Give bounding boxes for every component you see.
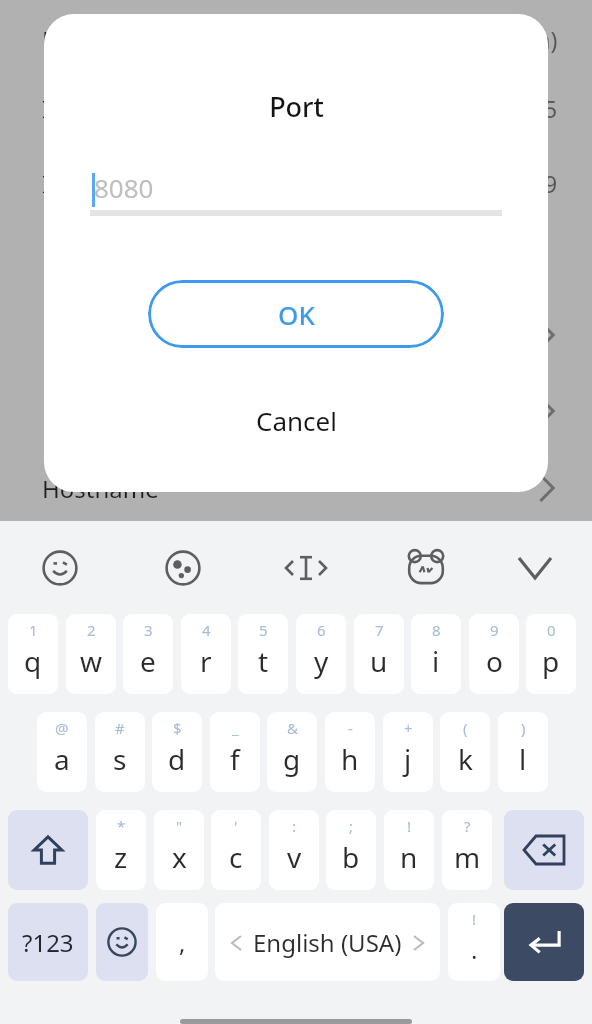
staticText: 6 <box>317 620 326 640</box>
staticText: # <box>115 718 125 738</box>
button[interactable]: # <box>95 712 145 792</box>
button[interactable]: @ <box>37 712 87 792</box>
button[interactable]: & <box>267 712 317 792</box>
staticText: y <box>314 642 329 680</box>
button[interactable]: Proxy <box>0 378 592 444</box>
staticText: & <box>287 718 298 738</box>
staticText: Port <box>42 319 90 352</box>
button[interactable]: English (USA) <box>215 903 440 981</box>
staticText: 8080 <box>94 170 154 205</box>
button[interactable]: Emoji <box>30 538 90 598</box>
staticText: 9 <box>544 168 558 199</box>
button[interactable]: Identity <box>0 150 592 216</box>
staticText: x <box>172 838 187 876</box>
staticText: OK <box>278 297 315 332</box>
staticText: f <box>230 740 240 778</box>
button[interactable]: Hide keyboard <box>505 538 565 598</box>
button[interactable]: Cursor control <box>276 538 336 598</box>
button[interactable]: ! <box>448 903 500 981</box>
staticText: z <box>114 838 128 876</box>
button[interactable]: _ <box>210 712 260 792</box>
staticText: j <box>404 740 412 778</box>
button[interactable]: 4 <box>181 614 231 694</box>
staticText: ' <box>234 816 238 836</box>
staticText: 5 <box>259 620 268 640</box>
staticText: a <box>54 740 70 778</box>
button[interactable]: ; <box>326 810 376 890</box>
staticText: $ <box>173 718 182 738</box>
staticText: : <box>292 816 297 836</box>
staticText: + <box>404 718 413 738</box>
staticText: Cancel <box>256 403 337 438</box>
staticText: MAC address (system) <box>42 23 290 56</box>
button[interactable]: OK <box>148 280 444 348</box>
staticText: e <box>140 642 156 680</box>
button[interactable]: , <box>156 903 208 981</box>
staticText: b <box>342 838 360 876</box>
button[interactable]: * <box>96 810 146 890</box>
staticText: k <box>458 740 473 778</box>
button[interactable]: ' <box>211 810 261 890</box>
staticText: c <box>229 838 243 876</box>
staticText: ! <box>472 909 477 929</box>
button[interactable]: Assistant <box>396 538 456 598</box>
button[interactable]: 5 <box>238 614 288 694</box>
button[interactable]: ( <box>440 712 490 792</box>
staticText: ? <box>464 816 471 836</box>
staticText: i <box>432 642 440 680</box>
staticText: _ <box>232 718 239 738</box>
staticText: 3 <box>144 620 153 640</box>
staticText: 5 <box>544 93 558 124</box>
button[interactable]: : <box>269 810 319 890</box>
staticText: @ <box>55 718 69 738</box>
button[interactable]: $ <box>152 712 202 792</box>
staticText: ( <box>463 718 468 738</box>
staticText: Identity <box>42 167 130 200</box>
button[interactable]: IP address <box>0 75 592 141</box>
button[interactable]: 2 <box>66 614 116 694</box>
staticText: s <box>113 740 127 778</box>
staticText: 8 <box>432 620 441 640</box>
button[interactable]: Hostname <box>0 455 592 521</box>
button[interactable]: ) <box>498 712 548 792</box>
button[interactable]: 7 <box>354 614 404 694</box>
staticText: . <box>471 933 478 966</box>
staticText: l <box>519 740 527 778</box>
button[interactable]: ! <box>384 810 434 890</box>
button[interactable]: Shift <box>8 810 88 890</box>
staticText: - <box>348 718 353 738</box>
button[interactable]: Backspace <box>504 810 584 890</box>
button[interactable]: 3 <box>123 614 173 694</box>
button[interactable]: 8080 <box>90 164 502 224</box>
staticText: d <box>168 740 186 778</box>
staticText: Hostname <box>42 472 159 505</box>
button[interactable]: Emoji <box>96 903 148 981</box>
staticText: o <box>486 642 503 680</box>
button[interactable]: ? <box>442 810 492 890</box>
button[interactable]: 1 <box>8 614 58 694</box>
staticText: 0 <box>547 620 556 640</box>
staticText: m <box>454 838 481 876</box>
button[interactable]: 8 <box>411 614 461 694</box>
staticText: 2 <box>87 620 96 640</box>
staticText: h <box>341 740 359 778</box>
button[interactable]: Language <box>153 538 213 598</box>
button[interactable]: ?123 <box>8 903 88 981</box>
staticText: g <box>283 740 301 778</box>
button[interactable]: Enter <box>504 903 584 981</box>
staticText: ; <box>349 816 354 836</box>
button[interactable]: Port <box>0 302 592 368</box>
staticText: v <box>287 838 302 876</box>
button[interactable]: " <box>154 810 204 890</box>
staticText: , <box>179 926 186 959</box>
staticText: 9 <box>490 620 499 640</box>
button[interactable]: 0 <box>526 614 576 694</box>
button[interactable]: MAC address (system) <box>0 6 592 72</box>
staticText: ?123 <box>22 926 74 959</box>
button[interactable]: Cancel <box>44 392 548 448</box>
button[interactable]: - <box>325 712 375 792</box>
button[interactable]: + <box>383 712 433 792</box>
staticText: ! <box>407 816 412 836</box>
button[interactable]: 6 <box>296 614 346 694</box>
button[interactable]: 9 <box>469 614 519 694</box>
